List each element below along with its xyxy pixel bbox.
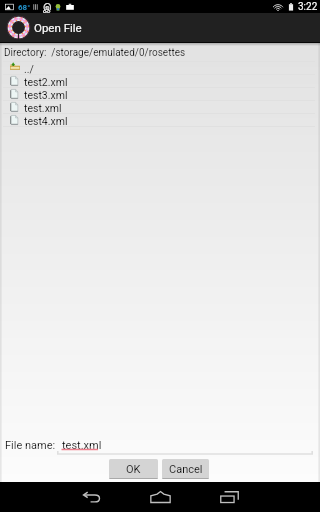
staticText: இ (42, 2, 51, 12)
staticText: ../ (24, 63, 34, 75)
staticText: test4.xml (24, 115, 68, 127)
button[interactable]: Home (138, 482, 182, 512)
button[interactable]: Back (70, 482, 114, 512)
staticText: test.xml (62, 439, 102, 452)
staticText: Cancel (169, 463, 203, 476)
staticText: OK (126, 463, 141, 476)
button[interactable]: test4.xml (0, 114, 320, 127)
button[interactable]: Cancel (162, 459, 209, 479)
button[interactable]: test.xml (57, 432, 313, 455)
staticText: File name: (5, 439, 56, 452)
button[interactable]: test3.xml (0, 88, 320, 101)
staticText: 68° (18, 3, 31, 12)
staticText: Directory: /storage/emulated/0/rosettes (4, 47, 186, 59)
button[interactable]: test.xml (0, 101, 320, 114)
staticText: test2.xml (24, 76, 68, 88)
button[interactable]: OK (109, 459, 158, 479)
staticText: Open File (34, 21, 82, 34)
button[interactable]: test2.xml (0, 75, 320, 88)
button[interactable]: ../ (0, 62, 320, 75)
staticText: test.xml (24, 102, 62, 114)
button[interactable]: Recent apps (207, 482, 251, 512)
staticText: 3:22 (298, 1, 318, 13)
staticText: test3.xml (24, 89, 68, 101)
